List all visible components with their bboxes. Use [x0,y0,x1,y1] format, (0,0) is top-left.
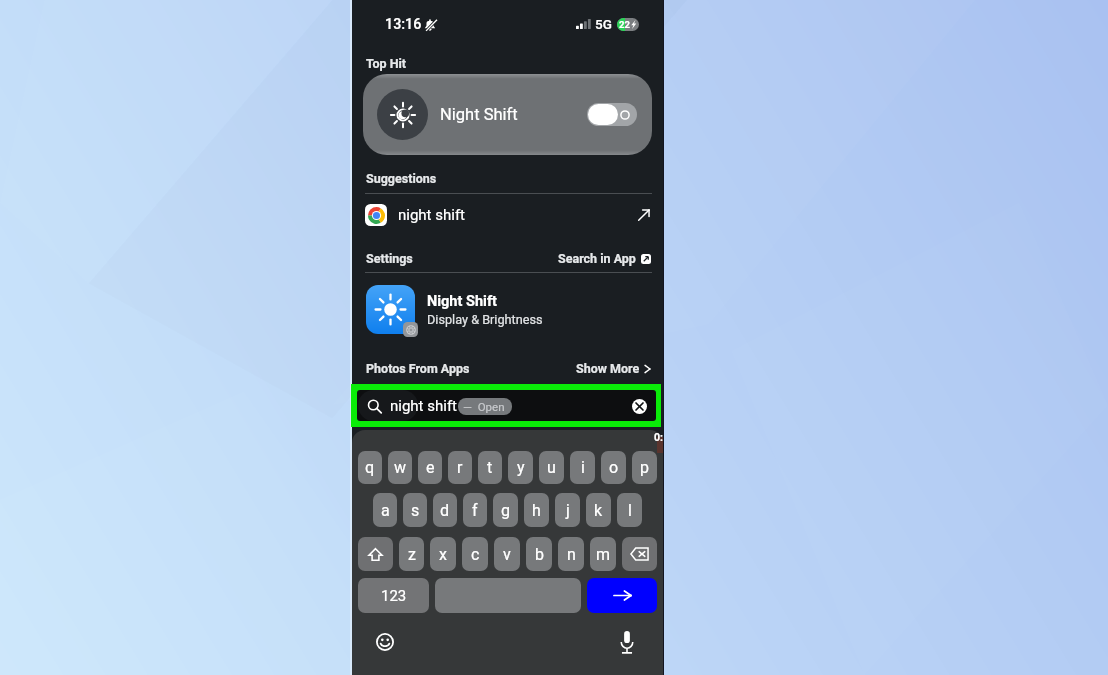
staticText: b [535,545,544,564]
button[interactable]: p [632,451,657,484]
button[interactable]: f [463,493,487,527]
button[interactable]: Night Shift [366,284,663,336]
staticText: 123 [381,587,407,605]
staticText: z [408,545,416,564]
button[interactable]: e [418,451,442,484]
staticText: e [426,458,435,477]
staticText: v [503,545,511,564]
staticText: t [487,458,493,477]
staticText: 22 [619,19,630,30]
staticText: a [381,501,390,520]
button[interactable]: Night Shift [363,74,652,155]
staticText: 13:16 [385,16,422,33]
staticText: Search in App [558,251,636,266]
button[interactable]: i [570,451,595,484]
button[interactable]: l [617,493,642,527]
staticText: q [365,458,375,477]
staticText: y [517,458,525,477]
staticText: s [411,501,420,520]
button[interactable]: Search [587,578,657,613]
staticText: g [501,501,510,520]
button[interactable]: u [539,451,564,484]
button[interactable]: night shift [357,390,656,421]
staticText: i [581,458,585,477]
staticText: k [594,501,603,520]
staticText: Display & Brightness [427,312,543,327]
button[interactable]: night shift [365,202,651,228]
button[interactable]: z [399,537,424,571]
staticText: Settings [366,251,413,266]
button[interactable]: r [448,451,472,484]
button[interactable]: n [558,537,584,571]
staticText: r [457,458,463,477]
staticText: h [532,501,541,520]
button[interactable]: Voice input [618,629,636,655]
button[interactable]: Shift [358,537,393,571]
staticText: — Open [463,400,505,413]
staticText: f [472,501,478,520]
button[interactable]: t [478,451,502,484]
button[interactable]: Search in App [352,251,651,266]
button[interactable]: c [462,537,488,571]
button[interactable]: j [555,493,580,527]
staticText: night shift [398,206,466,224]
staticText: c [471,545,480,564]
other: Open suggestion [637,208,651,222]
button[interactable]: g [493,493,518,527]
button[interactable]: x [430,537,456,571]
staticText: 5G [595,16,612,32]
staticText: p [640,458,649,477]
button[interactable]: Clear search [632,399,647,414]
staticText: Top Hit [366,56,407,71]
button[interactable]: 123 [358,578,429,613]
staticText: Suggestions [366,171,437,186]
button[interactable]: Emoji [376,633,394,651]
staticText: x [439,545,447,564]
button[interactable]: b [526,537,552,571]
staticText: d [440,501,450,520]
staticText: night shift [390,397,458,415]
staticText: l [628,501,632,520]
button[interactable]: o [601,451,626,484]
staticText: w [394,458,407,477]
button[interactable]: Backspace [622,537,657,571]
staticText: m [596,545,611,564]
button[interactable]: s [403,493,427,527]
button[interactable]: y [508,451,533,484]
staticText: Show More [576,361,640,376]
button[interactable]: v [494,537,520,571]
button[interactable]: w [388,451,412,484]
button[interactable]: d [433,493,457,527]
staticText: j [566,501,570,520]
button[interactable]: Space [435,578,581,613]
button[interactable]: a [373,493,397,527]
button[interactable]: k [586,493,611,527]
staticText: o [609,458,619,477]
button[interactable]: Night Shift toggle [587,103,637,126]
staticText: n [567,545,576,564]
staticText: u [547,458,556,477]
button[interactable]: m [590,537,616,571]
button[interactable]: h [524,493,549,527]
button[interactable]: q [358,451,382,484]
staticText: Night Shift [427,293,497,310]
staticText: Photos From Apps [366,361,470,376]
staticText: 0: [654,431,663,443]
staticText: Night Shift [440,105,518,124]
button[interactable]: Show More [352,361,651,376]
